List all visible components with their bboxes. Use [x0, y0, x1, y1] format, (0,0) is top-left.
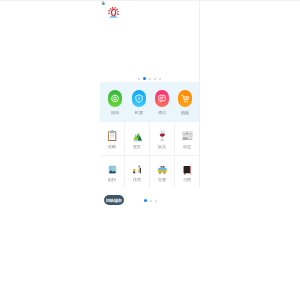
button[interactable]: 街拍 — [100, 156, 124, 188]
staticText: 切换城市 — [106, 198, 122, 203]
button[interactable]: 🍷 — [150, 122, 174, 155]
staticText: 🍷 — [156, 130, 169, 142]
staticText: 📰 — [181, 130, 194, 142]
button[interactable]: 📰 — [175, 122, 199, 155]
staticText: 📋 — [106, 130, 119, 142]
staticText: 住宿 — [133, 177, 141, 182]
button[interactable]: 酒店 — [150, 82, 173, 122]
button[interactable]: 购物 — [173, 82, 196, 122]
button[interactable]: 机票 — [127, 82, 150, 122]
staticText: 旅游 — [111, 110, 119, 115]
button[interactable]: 切换城市 — [104, 195, 124, 205]
button[interactable]: 旅游 — [103, 82, 127, 122]
button[interactable]: 📋 — [100, 122, 124, 155]
staticText: 习惯 — [183, 177, 191, 182]
button[interactable]: 交通 — [150, 156, 174, 188]
staticText: 交通 — [158, 177, 166, 182]
button[interactable]: 习惯 — [175, 156, 199, 188]
staticText: 动态 — [183, 144, 191, 149]
staticText: 机票 — [135, 110, 143, 115]
button[interactable]: 景区 — [125, 122, 149, 155]
staticText: 街拍 — [108, 177, 116, 182]
staticText: 景区 — [133, 144, 141, 149]
staticText: 酒店 — [158, 110, 166, 115]
button[interactable]: 住宿 — [125, 156, 149, 188]
staticText: 娱乐 — [158, 144, 166, 149]
staticText: 购物 — [181, 110, 189, 115]
staticText: 攻略 — [108, 144, 116, 149]
